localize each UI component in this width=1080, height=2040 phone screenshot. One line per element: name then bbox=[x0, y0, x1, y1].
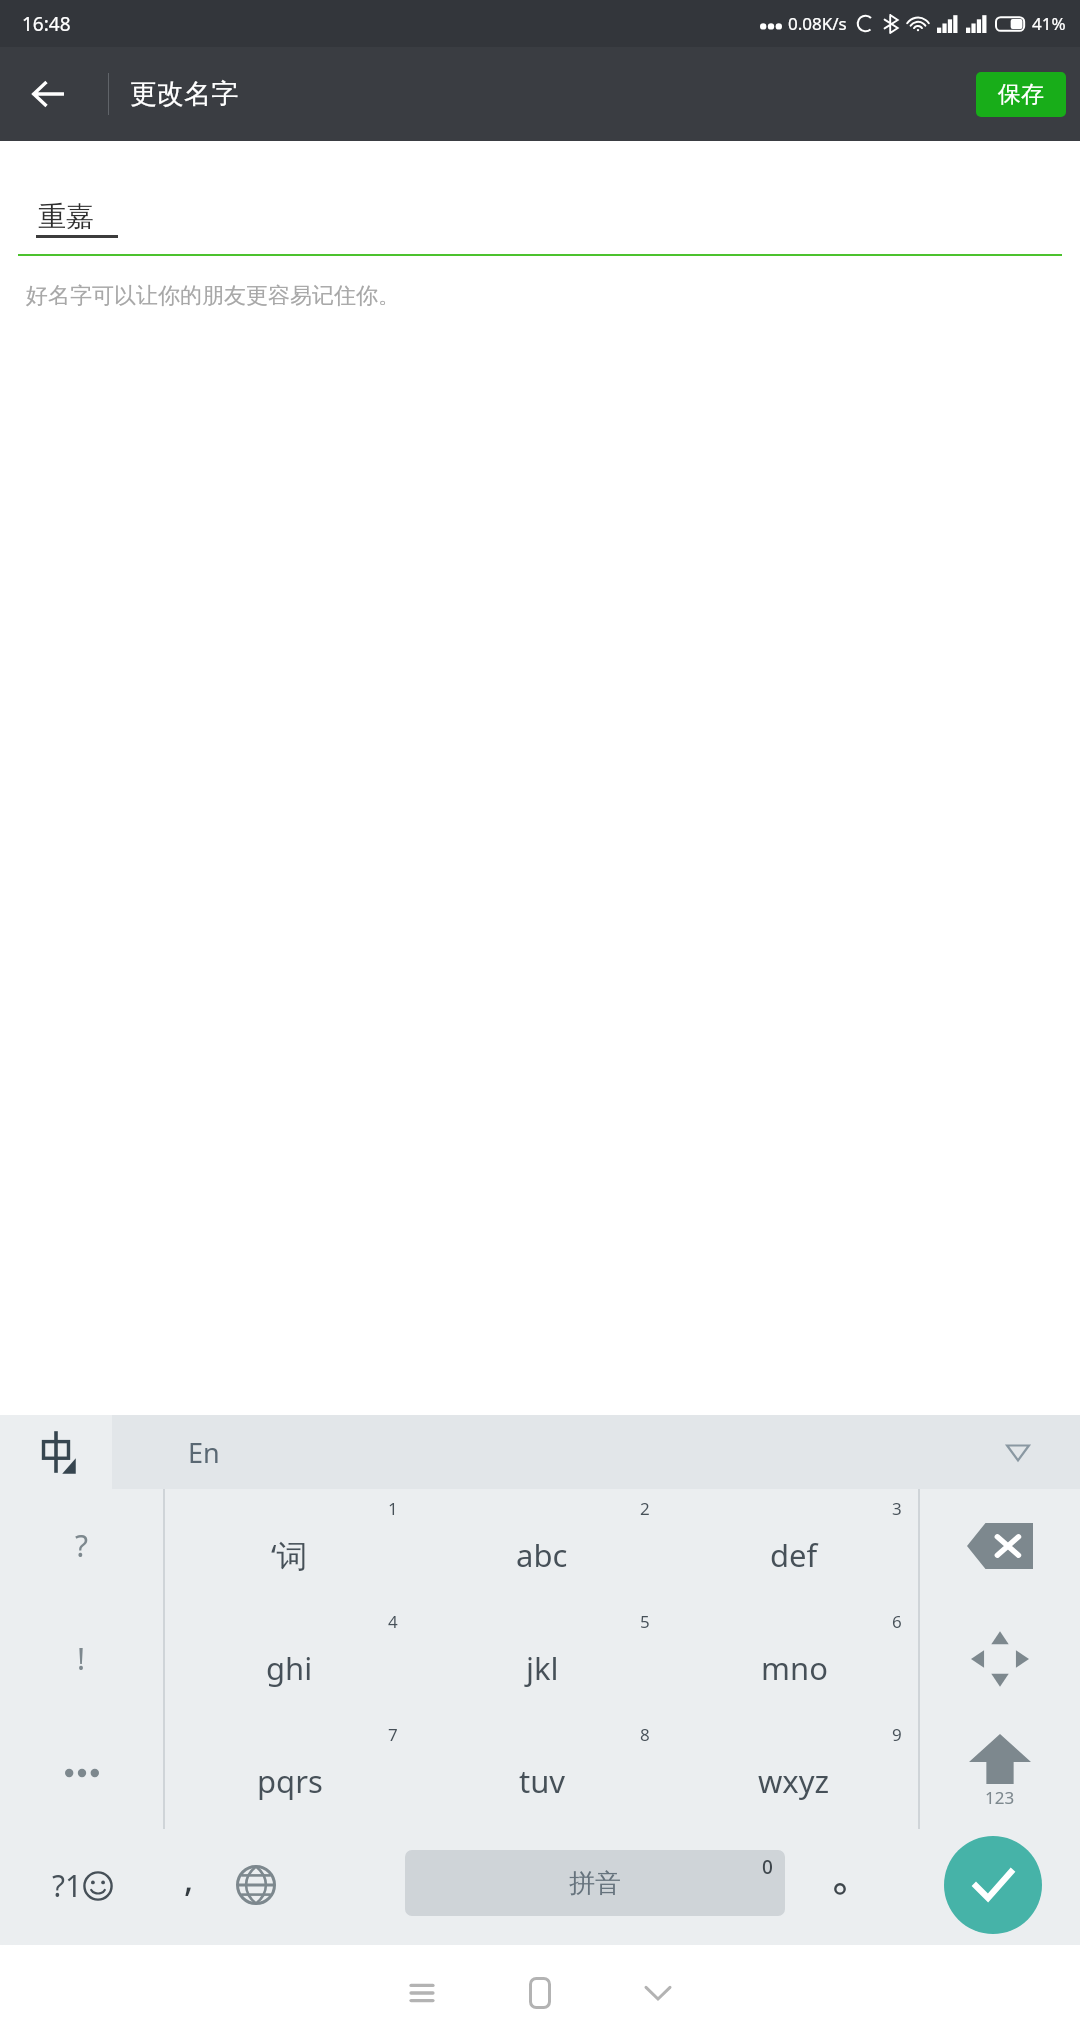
button[interactable]: Confirm bbox=[944, 1836, 1042, 1934]
staticText: mno bbox=[761, 1647, 828, 1689]
staticText: jkl bbox=[526, 1647, 559, 1689]
button[interactable]: Symbols and emoji bbox=[20, 1835, 144, 1935]
button[interactable]: 7 bbox=[163, 1715, 416, 1828]
staticText: ? bbox=[75, 1525, 89, 1566]
staticText: 0 bbox=[762, 1854, 773, 1880]
staticText: 9 bbox=[892, 1723, 902, 1746]
staticText: wxyz bbox=[758, 1760, 830, 1802]
staticText: ghi bbox=[266, 1647, 313, 1689]
staticText: 1 bbox=[388, 1497, 398, 1520]
staticText: 3 bbox=[892, 1497, 902, 1520]
button[interactable]: 6 bbox=[668, 1602, 920, 1715]
staticText: 重嘉 bbox=[38, 199, 94, 234]
button[interactable]: 2 bbox=[416, 1489, 668, 1602]
staticText: 好名字可以让你的朋友更容易记住你。 bbox=[26, 282, 400, 310]
staticText: ‘词 bbox=[271, 1534, 308, 1576]
button[interactable]: 8 bbox=[416, 1715, 668, 1828]
button[interactable]: Hide keyboard bbox=[996, 1430, 1040, 1474]
staticText: 7 bbox=[388, 1723, 398, 1746]
button[interactable]: 9 bbox=[668, 1715, 920, 1828]
staticText: abc bbox=[516, 1534, 568, 1576]
staticText: En bbox=[188, 1434, 220, 1471]
staticText: 5 bbox=[640, 1610, 650, 1633]
button[interactable]: 3 bbox=[668, 1489, 920, 1602]
button[interactable]: Symbol … bbox=[0, 1715, 163, 1828]
staticText: , bbox=[184, 1856, 194, 1902]
button[interactable]: Symbol ? bbox=[0, 1489, 163, 1602]
staticText: 更改名字 bbox=[130, 77, 238, 111]
button[interactable]: Chinese input bbox=[0, 1415, 112, 1489]
staticText: 0.08K/s bbox=[788, 12, 847, 35]
staticText: def bbox=[770, 1534, 818, 1576]
staticText: 4 bbox=[388, 1610, 398, 1633]
button[interactable]: Menu bbox=[377, 1945, 467, 2040]
staticText: 123 bbox=[985, 1786, 1015, 1809]
button[interactable]: Home bbox=[495, 1945, 585, 2040]
staticText: 6 bbox=[892, 1610, 902, 1633]
staticText: 41% bbox=[1032, 12, 1066, 35]
button[interactable]: 1 bbox=[163, 1489, 416, 1602]
button[interactable]: 4 bbox=[163, 1602, 416, 1715]
button[interactable]: Back bbox=[0, 47, 96, 141]
button[interactable]: Comma bbox=[148, 1835, 230, 1935]
button[interactable]: 保存 bbox=[976, 72, 1066, 117]
button[interactable]: Switch to numbers bbox=[920, 1715, 1080, 1828]
staticText: 8 bbox=[640, 1723, 650, 1746]
button[interactable]: Period bbox=[800, 1835, 880, 1935]
button[interactable]: Move cursor bbox=[920, 1602, 1080, 1715]
button[interactable]: En bbox=[112, 1415, 1080, 1489]
staticText: 保存 bbox=[998, 80, 1044, 109]
staticText: 2 bbox=[640, 1497, 650, 1520]
staticText: ?1 bbox=[52, 1865, 83, 1906]
staticText: 拼音 bbox=[569, 1867, 621, 1900]
button[interactable]: Hide keyboard bbox=[613, 1945, 703, 2040]
staticText: tuv bbox=[519, 1760, 566, 1802]
staticText: ! bbox=[77, 1638, 86, 1679]
button[interactable]: Backspace bbox=[920, 1489, 1080, 1602]
button[interactable]: Symbol ! bbox=[0, 1602, 163, 1715]
staticText: pqrs bbox=[257, 1760, 323, 1802]
button[interactable]: 拼音 bbox=[405, 1850, 785, 1916]
button[interactable]: Change language bbox=[212, 1835, 300, 1935]
button[interactable]: 5 bbox=[416, 1602, 668, 1715]
staticText: 16:48 bbox=[22, 11, 71, 37]
